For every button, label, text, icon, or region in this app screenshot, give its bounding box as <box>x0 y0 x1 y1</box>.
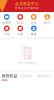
button[interactable]: 邀请 <box>27 25 40 36</box>
button[interactable]: 红包 <box>13 14 27 25</box>
staticText: 会员权益中心 <box>15 1 39 6</box>
staticText: 更多优惠 <box>20 74 32 78</box>
staticText: 暂无可用权益 <box>18 62 36 65</box>
staticText: 红包 <box>17 21 23 24</box>
button[interactable]: 查看全部 > <box>37 74 52 78</box>
button[interactable]: 卡包 <box>0 25 13 36</box>
staticText: 会员 <box>31 21 37 24</box>
button[interactable]: 优惠券 <box>0 14 13 25</box>
staticText: 积分 <box>44 21 50 24</box>
staticText: 尊享会员专属特权 <box>15 6 39 10</box>
staticText: 卡包 <box>4 32 10 36</box>
button[interactable]: 会员 <box>27 14 40 25</box>
staticText: 查看全部 > <box>37 74 52 78</box>
button[interactable]: 积分 <box>40 14 54 25</box>
staticText: 优惠券 <box>2 21 11 24</box>
staticText: 邀请 <box>31 32 37 36</box>
staticText: 推荐权益 <box>2 73 18 78</box>
button[interactable]: 任务 <box>13 25 27 36</box>
staticText: 任务 <box>17 32 23 36</box>
